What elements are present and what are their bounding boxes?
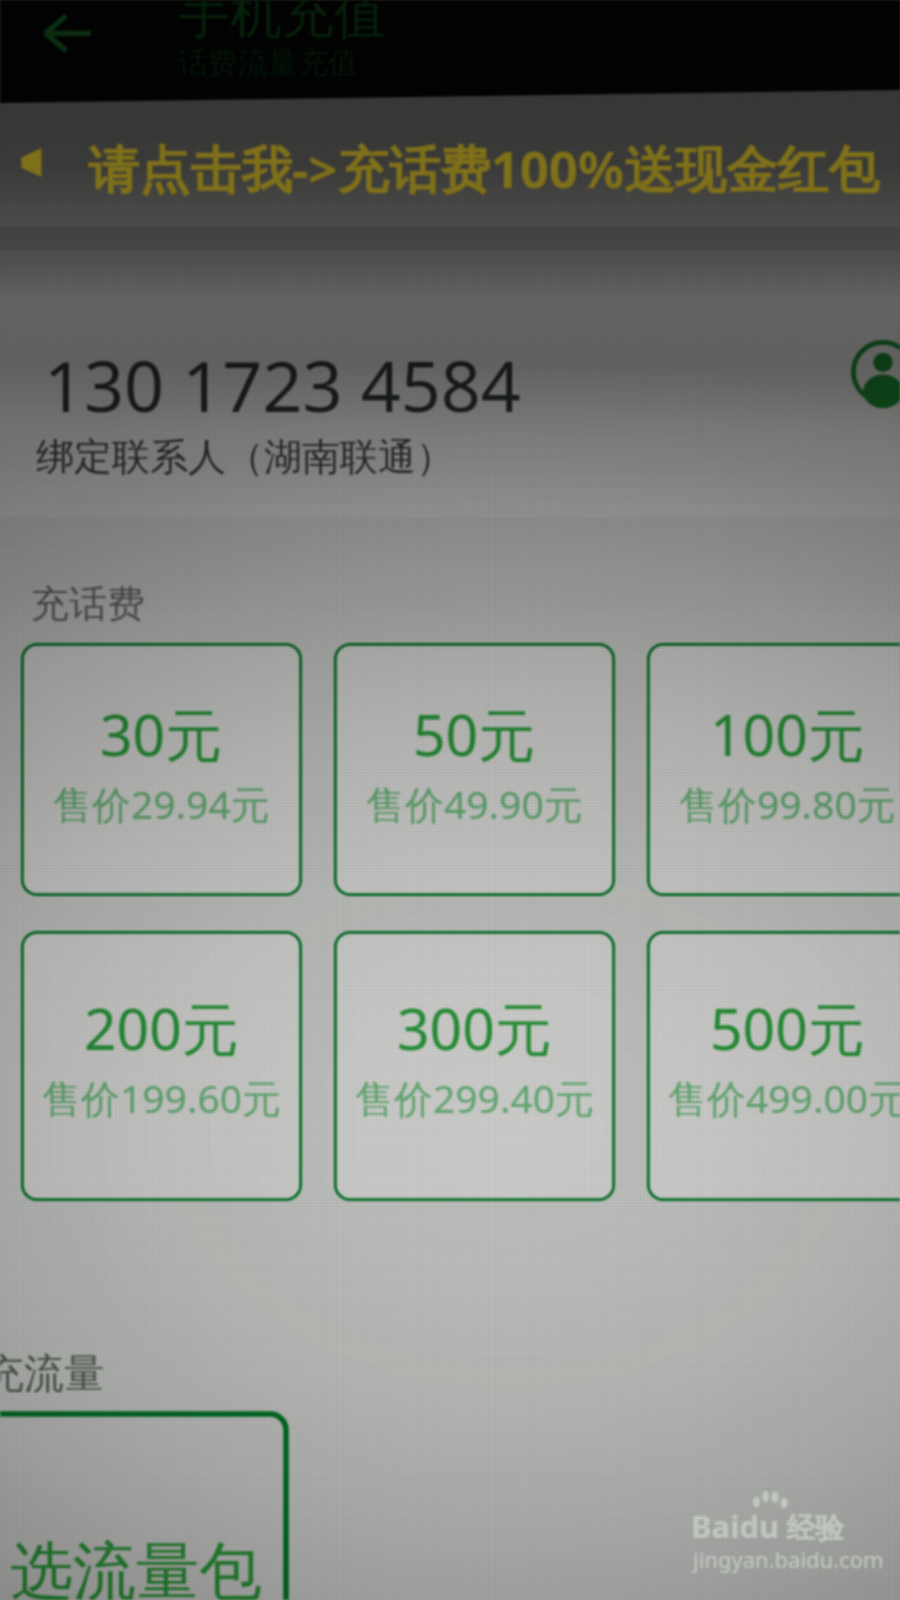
staticText: 充话费 [31,580,145,628]
button[interactable]: 130 1723 4584 [0,251,900,517]
staticText: 售价499.00元 [668,1071,900,1124]
button[interactable]: Contacts [851,340,900,404]
staticText: 充流量 [0,1348,104,1398]
staticText: 100元 [710,695,865,773]
button[interactable]: App bar [0,0,900,110]
button[interactable]: 选流量包 [0,1414,286,1600]
staticText: Baidu [691,1505,780,1547]
button[interactable]: 请点击我->充话费100%送现金红包 [88,133,880,203]
button[interactable]: 200元 [21,931,302,1201]
staticText: 130 1723 4584 [44,337,521,432]
staticText: 售价49.90元 [366,777,583,830]
staticText: 绑定联系人（湖南联通） [36,433,454,481]
button[interactable] [0,88,900,227]
button[interactable]: 500元 [647,931,900,1201]
staticText: 50元 [413,695,536,773]
staticText: 售价99.80元 [679,777,896,830]
staticText: 售价29.94元 [53,777,270,830]
staticText: 经验 [786,1510,844,1547]
staticText: 200元 [84,989,239,1067]
button[interactable]: Back [36,6,94,64]
staticText: 话费流量充值 [178,44,358,82]
staticText: 售价299.40元 [355,1071,594,1124]
staticText: 手机充值 [178,0,386,48]
button[interactable]: 100元 [647,643,900,896]
button[interactable]: 300元 [334,931,615,1201]
staticText: jingyan.baidu.com [693,1544,884,1574]
staticText: 300元 [397,989,552,1067]
staticText: 售价199.60元 [42,1071,281,1124]
staticText: 选流量包 [10,1532,262,1600]
button[interactable]: 50元 [334,643,615,896]
button[interactable]: 30元 [21,643,302,896]
staticText: 500元 [710,989,865,1067]
staticText: 30元 [100,695,223,773]
